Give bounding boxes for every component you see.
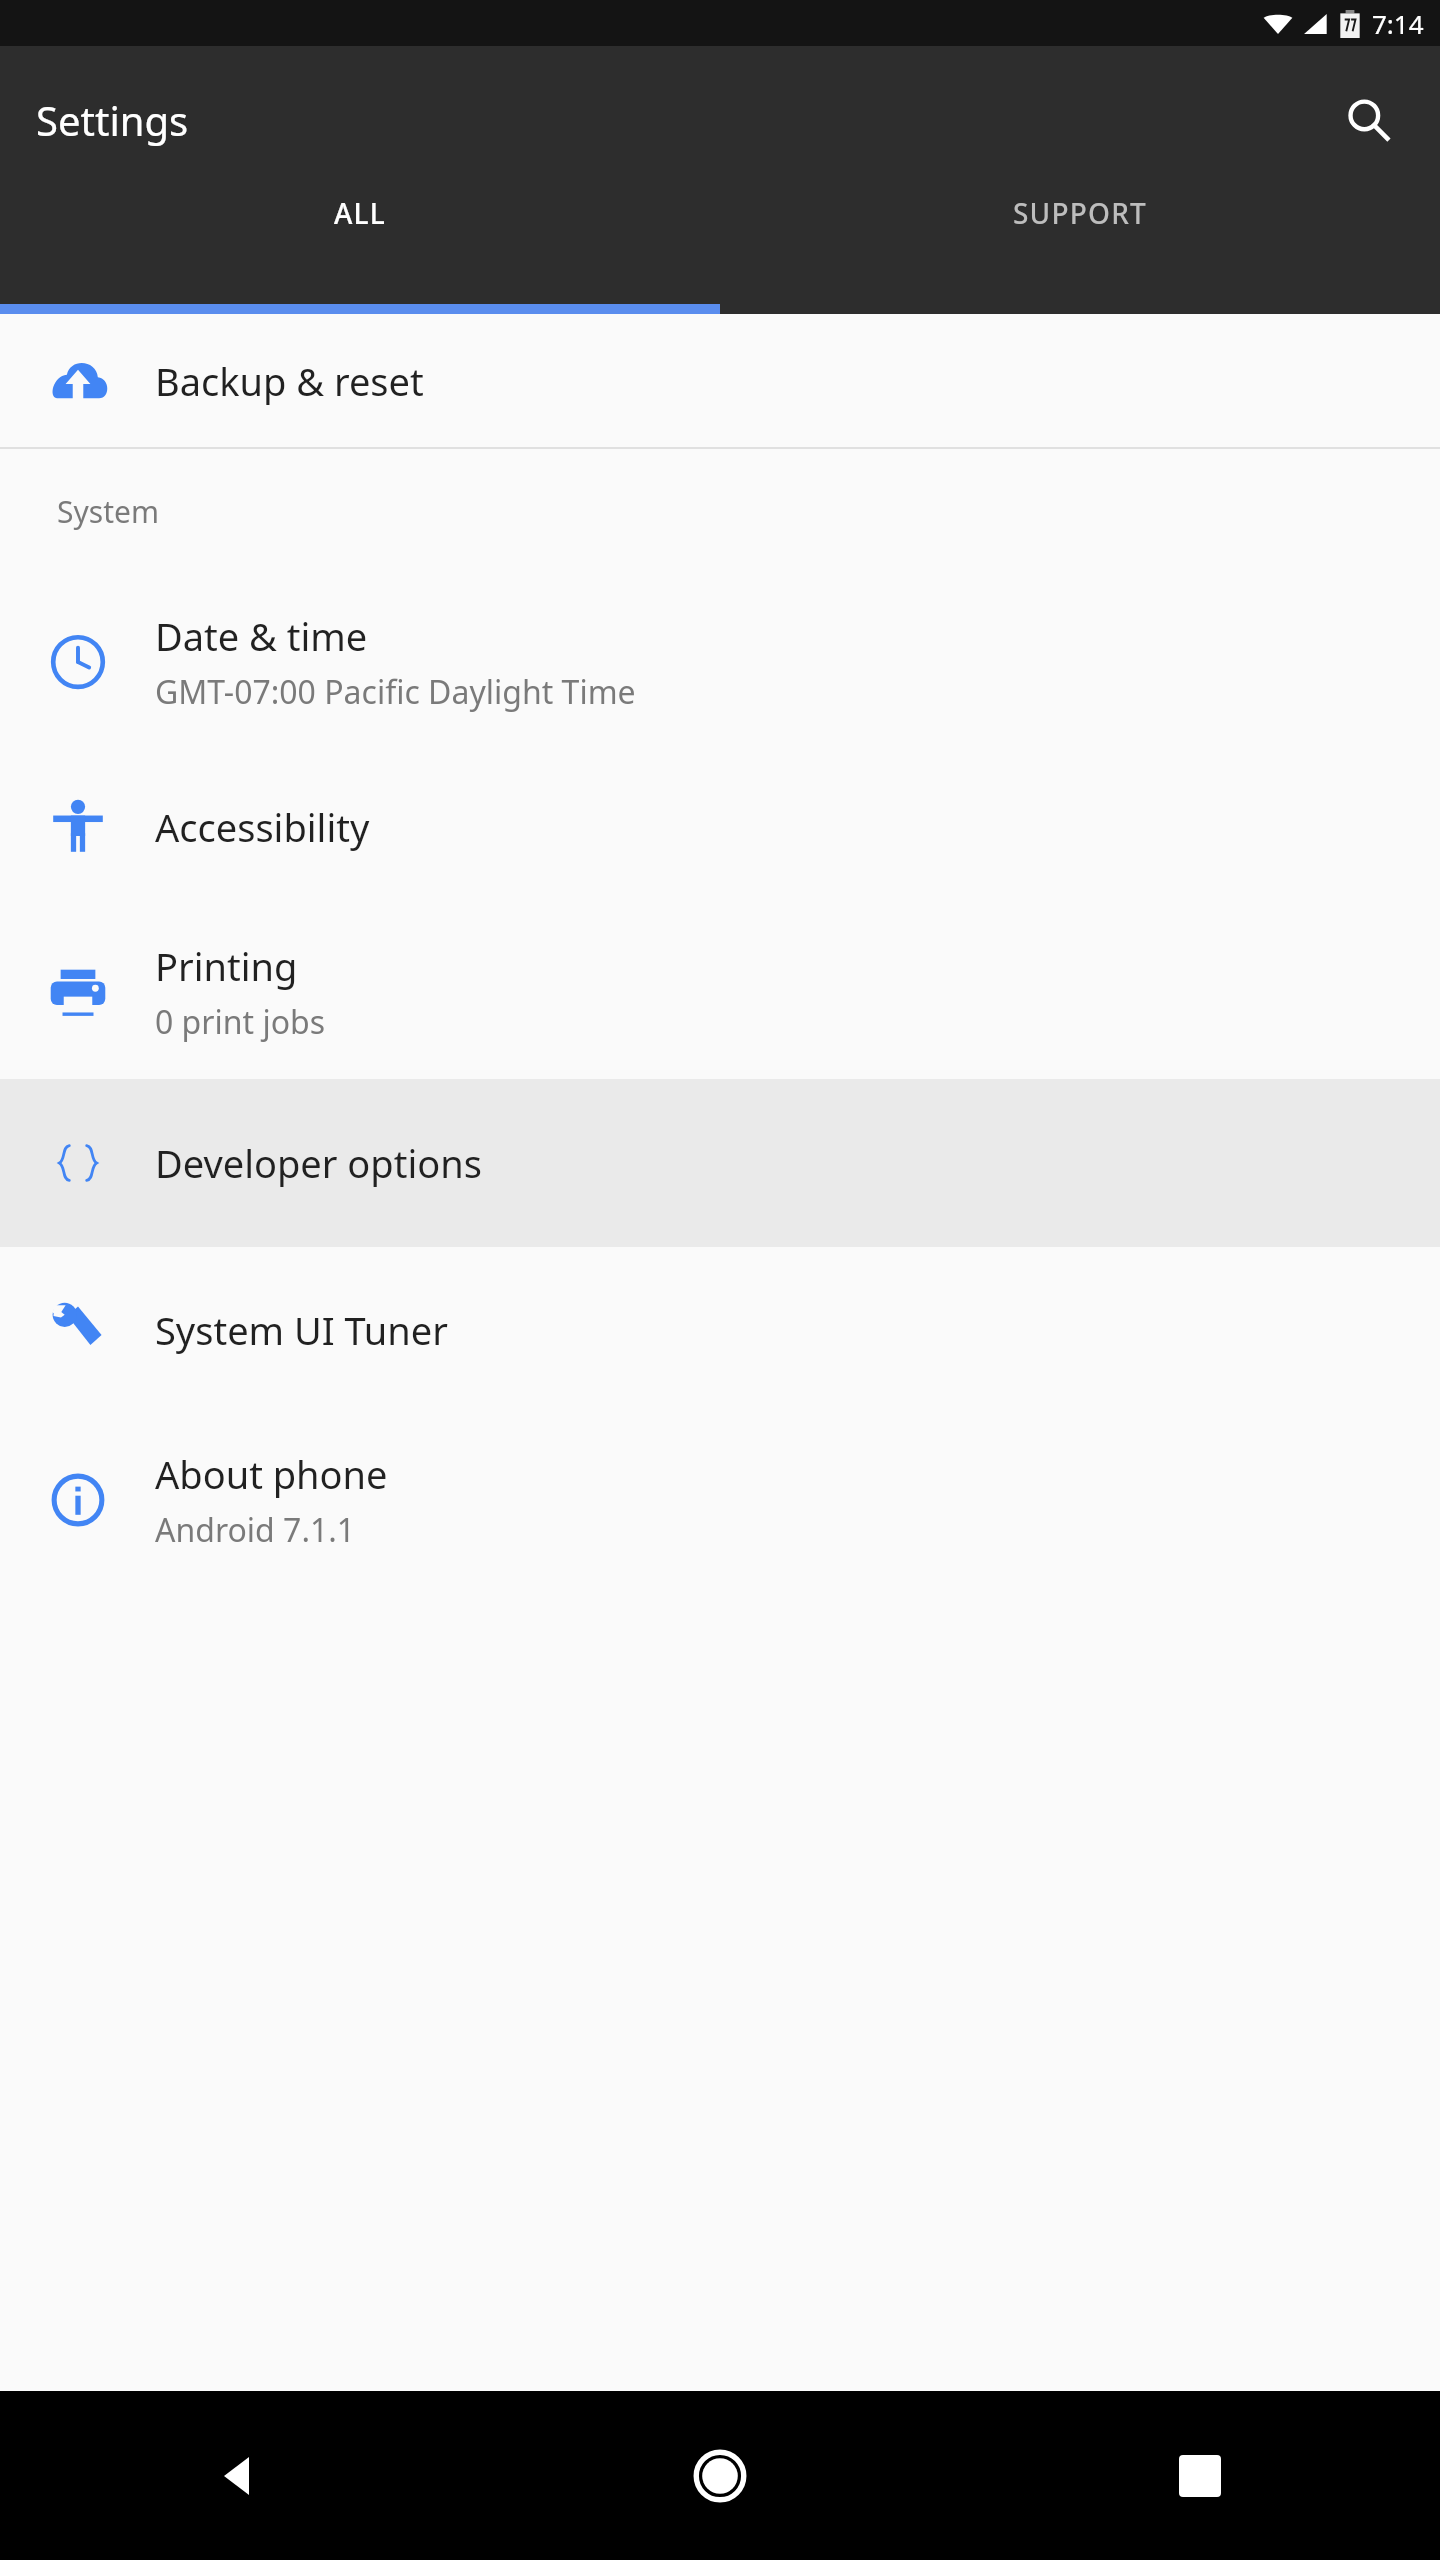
button[interactable]: Backup & reset bbox=[0, 314, 1440, 447]
button[interactable]: System UI Tuner bbox=[0, 1247, 1440, 1412]
staticText: 7:14 bbox=[1372, 6, 1424, 41]
staticText: 0 print jobs bbox=[155, 1000, 326, 1044]
staticText: Date & time bbox=[155, 610, 368, 662]
staticText: Settings bbox=[36, 93, 189, 147]
staticText: System bbox=[57, 491, 159, 532]
staticText: ALL bbox=[334, 194, 386, 232]
staticText: Accessibility bbox=[155, 801, 370, 853]
button[interactable]: Printing bbox=[0, 904, 1440, 1079]
staticText: Printing bbox=[155, 940, 298, 992]
button[interactable]: Back bbox=[0, 2391, 480, 2560]
staticText: About phone bbox=[155, 1448, 388, 1500]
button[interactable]: ALL bbox=[0, 194, 720, 232]
staticText: Developer options bbox=[155, 1137, 482, 1189]
button[interactable]: Recents bbox=[960, 2391, 1440, 2560]
staticText: System UI Tuner bbox=[155, 1304, 448, 1356]
button[interactable]: Developer options bbox=[0, 1079, 1440, 1247]
button[interactable]: Search bbox=[1332, 84, 1404, 156]
button[interactable]: Date & time bbox=[0, 574, 1440, 749]
button[interactable]: About phone bbox=[0, 1412, 1440, 1587]
button[interactable]: SUPPORT bbox=[720, 194, 1440, 232]
staticText: SUPPORT bbox=[1013, 194, 1148, 232]
staticText: Android 7.1.1 bbox=[155, 1508, 356, 1552]
staticText: Backup & reset bbox=[155, 355, 424, 407]
button[interactable]: Home bbox=[480, 2391, 960, 2560]
staticText: GMT-07:00 Pacific Daylight Time bbox=[155, 670, 636, 714]
button[interactable]: Accessibility bbox=[0, 749, 1440, 904]
